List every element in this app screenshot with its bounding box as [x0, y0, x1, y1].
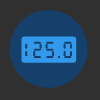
button[interactable]: 125.0: [22, 37, 77, 63]
button[interactable]: Weight reading 125.0, tap to change: [10, 10, 88, 88]
